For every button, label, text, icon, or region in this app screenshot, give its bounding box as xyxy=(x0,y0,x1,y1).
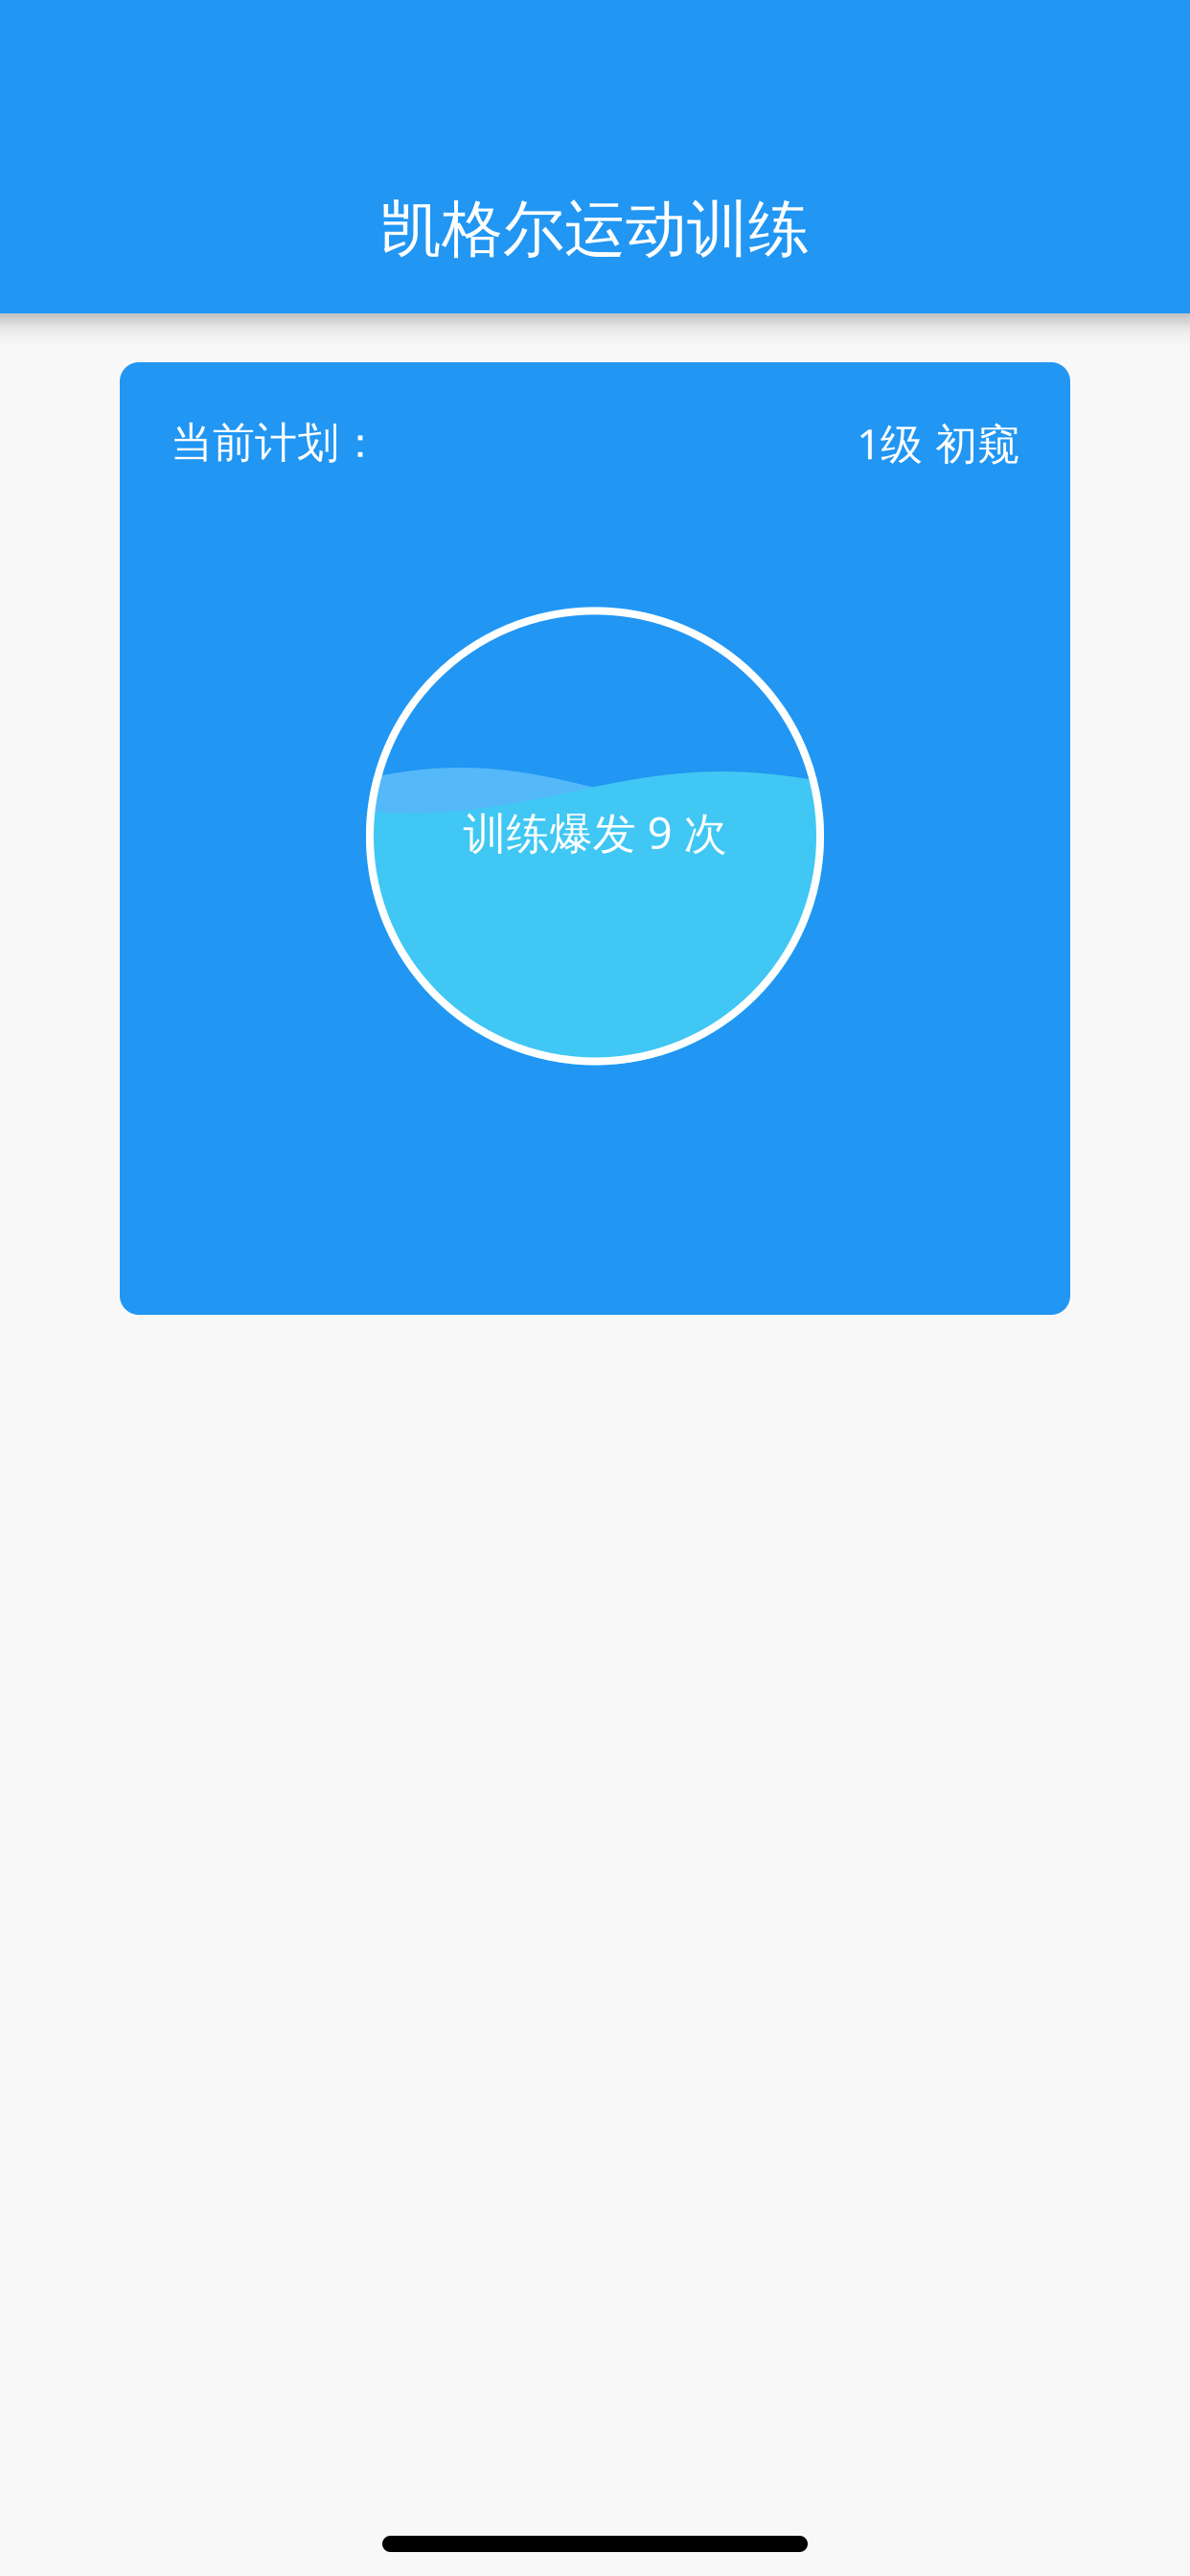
button[interactable]: 训练爆发 9 次 xyxy=(366,607,824,1065)
staticText: 当前计划： xyxy=(171,417,381,469)
staticText: 凯格尔运动训练 xyxy=(380,192,810,267)
staticText: 1级 初窥 xyxy=(857,415,1019,471)
staticText: 训练爆发 9 次 xyxy=(463,803,727,861)
button[interactable]: 当前计划： xyxy=(120,362,1070,484)
